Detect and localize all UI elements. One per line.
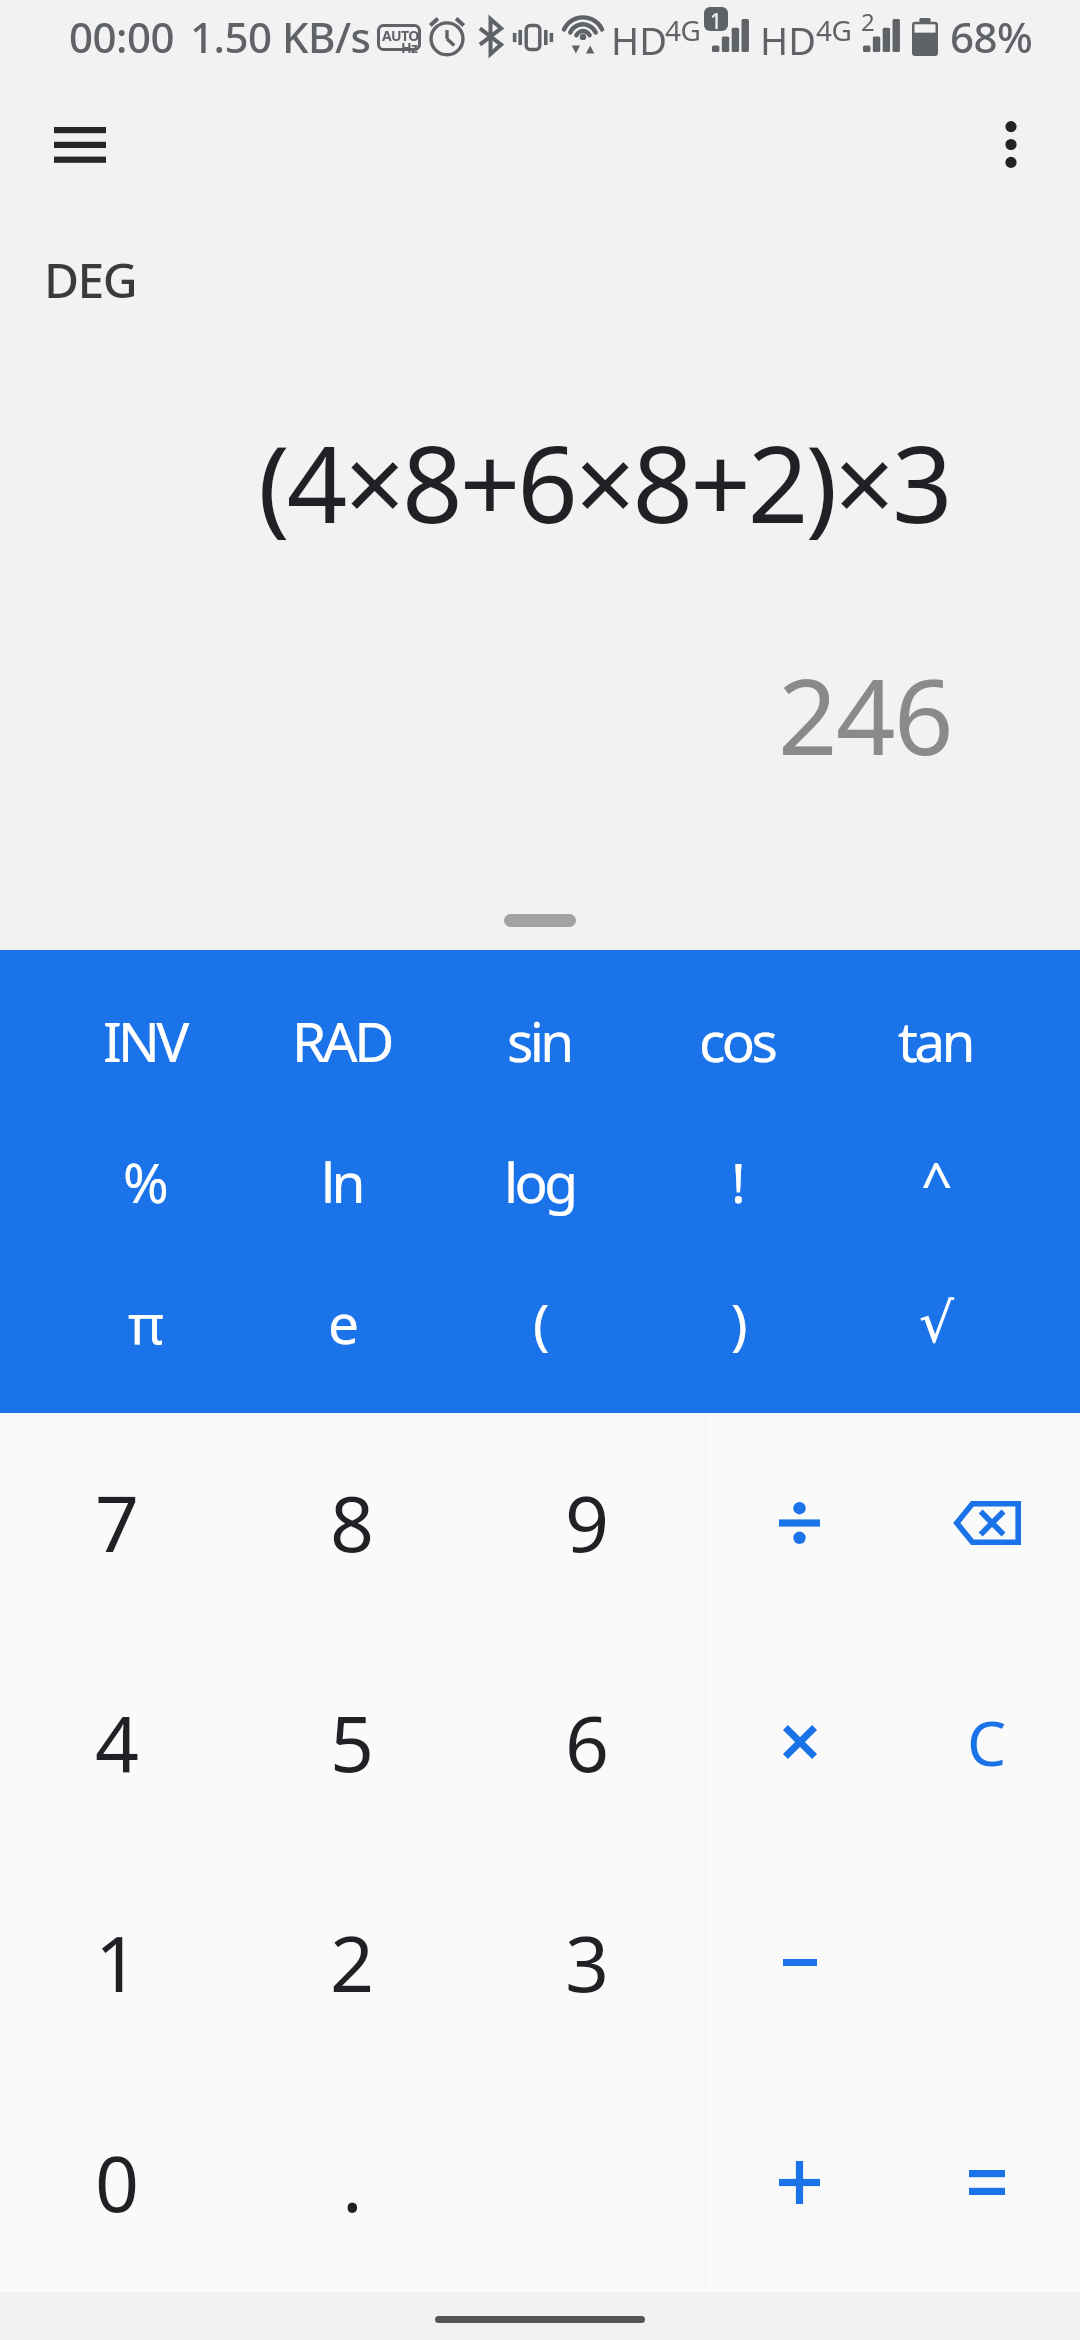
button[interactable]: √: [836, 1252, 1034, 1393]
button[interactable]: 1: [0, 1852, 235, 2072]
staticText: 1: [710, 7, 723, 31]
staticText: 68%: [950, 8, 1033, 65]
button[interactable]: 8: [235, 1413, 470, 1632]
button[interactable]: log: [440, 1111, 638, 1252]
button[interactable]: Backspace: [893, 1413, 1080, 1632]
staticText: C: [967, 1700, 1007, 1784]
staticText: 4: [95, 1690, 140, 1795]
button[interactable]: 5: [235, 1632, 470, 1852]
staticText: 5: [330, 1690, 375, 1795]
staticText: 3: [565, 1910, 610, 2015]
staticText: 7: [95, 1470, 140, 1575]
staticText: ^: [921, 1144, 949, 1219]
button[interactable]: ln: [243, 1111, 440, 1252]
button[interactable]: Menu: [28, 90, 132, 194]
button[interactable]: Divide: [706, 1413, 893, 1632]
staticText: e: [328, 1285, 356, 1360]
staticText: 246: [778, 644, 952, 786]
staticText: 1: [95, 1910, 140, 2015]
staticText: 6: [565, 1690, 610, 1795]
button[interactable]: cos: [638, 970, 836, 1111]
staticText: RAD: [292, 1003, 391, 1078]
staticText: tan: [898, 1003, 972, 1078]
button[interactable]: e: [243, 1252, 440, 1393]
staticText: 4G: [665, 11, 701, 49]
staticText: ln: [321, 1144, 362, 1219]
staticText: 2: [861, 5, 875, 38]
staticText: (: [533, 1285, 546, 1360]
staticText: 0: [95, 2130, 140, 2235]
staticText: π: [128, 1285, 161, 1360]
button[interactable]: 2: [235, 1852, 470, 2072]
staticText: sin: [507, 1003, 571, 1078]
staticText: .: [342, 2130, 363, 2235]
staticText: 8: [330, 1470, 375, 1575]
button[interactable]: RAD: [243, 970, 440, 1111]
button[interactable]: INV: [46, 970, 243, 1111]
button[interactable]: 3: [470, 1852, 705, 2072]
button[interactable]: 4: [0, 1632, 235, 1852]
button[interactable]: Multiply: [706, 1632, 893, 1852]
staticText: HD: [760, 14, 816, 66]
staticText: %: [123, 1144, 166, 1219]
staticText: HD: [611, 14, 667, 66]
button[interactable]: ): [638, 1252, 836, 1393]
staticText: AUTO: [382, 26, 419, 45]
button[interactable]: (: [440, 1252, 638, 1393]
staticText: INV: [103, 1003, 186, 1078]
button[interactable]: π: [46, 1252, 243, 1393]
staticText: 00:00: [69, 8, 175, 65]
button[interactable]: ^: [836, 1111, 1034, 1252]
button[interactable]: Minus: [706, 1852, 893, 2072]
button[interactable]: 9: [470, 1413, 705, 1632]
staticText: 9: [565, 1470, 610, 1575]
staticText: ): [731, 1285, 744, 1360]
staticText: √: [919, 1291, 951, 1355]
button[interactable]: 7: [0, 1413, 235, 1632]
button[interactable]: tan: [836, 970, 1034, 1111]
staticText: 1.50 KB/s: [190, 8, 371, 65]
button[interactable]: .: [235, 2072, 470, 2292]
button[interactable]: 0: [0, 2072, 235, 2292]
button[interactable]: !: [638, 1111, 836, 1252]
staticText: !: [731, 1144, 743, 1219]
staticText: cos: [699, 1003, 775, 1078]
button[interactable]: C: [893, 1632, 1080, 1852]
button[interactable]: 6: [470, 1632, 705, 1852]
button[interactable]: sin: [440, 970, 638, 1111]
staticText: 4G: [816, 11, 852, 49]
button[interactable]: Plus: [706, 2072, 893, 2292]
button[interactable]: %: [46, 1111, 243, 1252]
staticText: 2: [330, 1910, 375, 2015]
staticText: Hz: [401, 38, 418, 57]
button[interactable]: More options: [959, 92, 1063, 196]
staticText: log: [504, 1144, 575, 1219]
button[interactable]: Equals: [893, 2072, 1080, 2292]
staticText: (4×8+6×8+2)×3: [258, 410, 950, 554]
staticText: DEG: [44, 247, 137, 312]
